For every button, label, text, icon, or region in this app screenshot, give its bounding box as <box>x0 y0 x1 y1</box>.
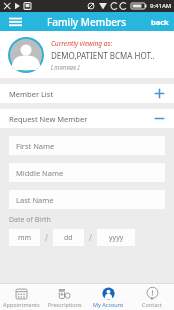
button[interactable]: [ manage ] <box>51 63 80 71</box>
button[interactable]: Currently viewing as: <box>0 31 174 78</box>
staticText: / <box>45 232 48 243</box>
button[interactable]: Last Name <box>9 190 165 209</box>
button[interactable]: back <box>151 17 169 27</box>
button[interactable]: My Account <box>86 284 130 310</box>
button[interactable]: Member List <box>0 84 174 103</box>
staticText: Currently viewing as: <box>51 39 113 48</box>
staticText: yyyy <box>109 233 124 243</box>
staticText: Prescriptions <box>48 301 82 308</box>
button[interactable]: First Name <box>9 136 165 155</box>
button[interactable]: Contact <box>130 284 174 310</box>
staticText: Date of Birth <box>9 215 51 225</box>
button[interactable]: dd <box>53 229 84 246</box>
staticText: back <box>151 17 169 27</box>
staticText: DEMO,PATIENT BCMA HOT.. <box>51 50 155 61</box>
button[interactable]: Appointments <box>0 284 43 310</box>
staticText: mm <box>18 233 32 243</box>
staticText: First Name <box>16 141 55 151</box>
staticText: Last Name <box>16 195 54 205</box>
staticText: Appointments <box>3 301 40 308</box>
staticText: 9:41AM <box>150 2 172 10</box>
staticText: dd <box>64 233 73 243</box>
staticText: [ manage ] <box>51 63 80 71</box>
button[interactable]: mm <box>9 229 40 246</box>
staticText: / <box>89 232 92 243</box>
button[interactable]: Request New Member <box>0 109 174 128</box>
button[interactable]: Prescriptions <box>43 284 86 310</box>
staticText: Middle Name <box>16 168 64 178</box>
button[interactable]: Middle Name <box>9 163 165 182</box>
button[interactable]: Open navigation menu <box>5 14 25 30</box>
staticText: Family Members <box>47 15 127 29</box>
staticText: Request New Member <box>9 114 154 124</box>
button[interactable]: yyyy <box>97 229 135 246</box>
staticText: My Account <box>93 301 124 308</box>
staticText: Member List <box>9 89 154 99</box>
staticText: Contact <box>142 301 162 308</box>
